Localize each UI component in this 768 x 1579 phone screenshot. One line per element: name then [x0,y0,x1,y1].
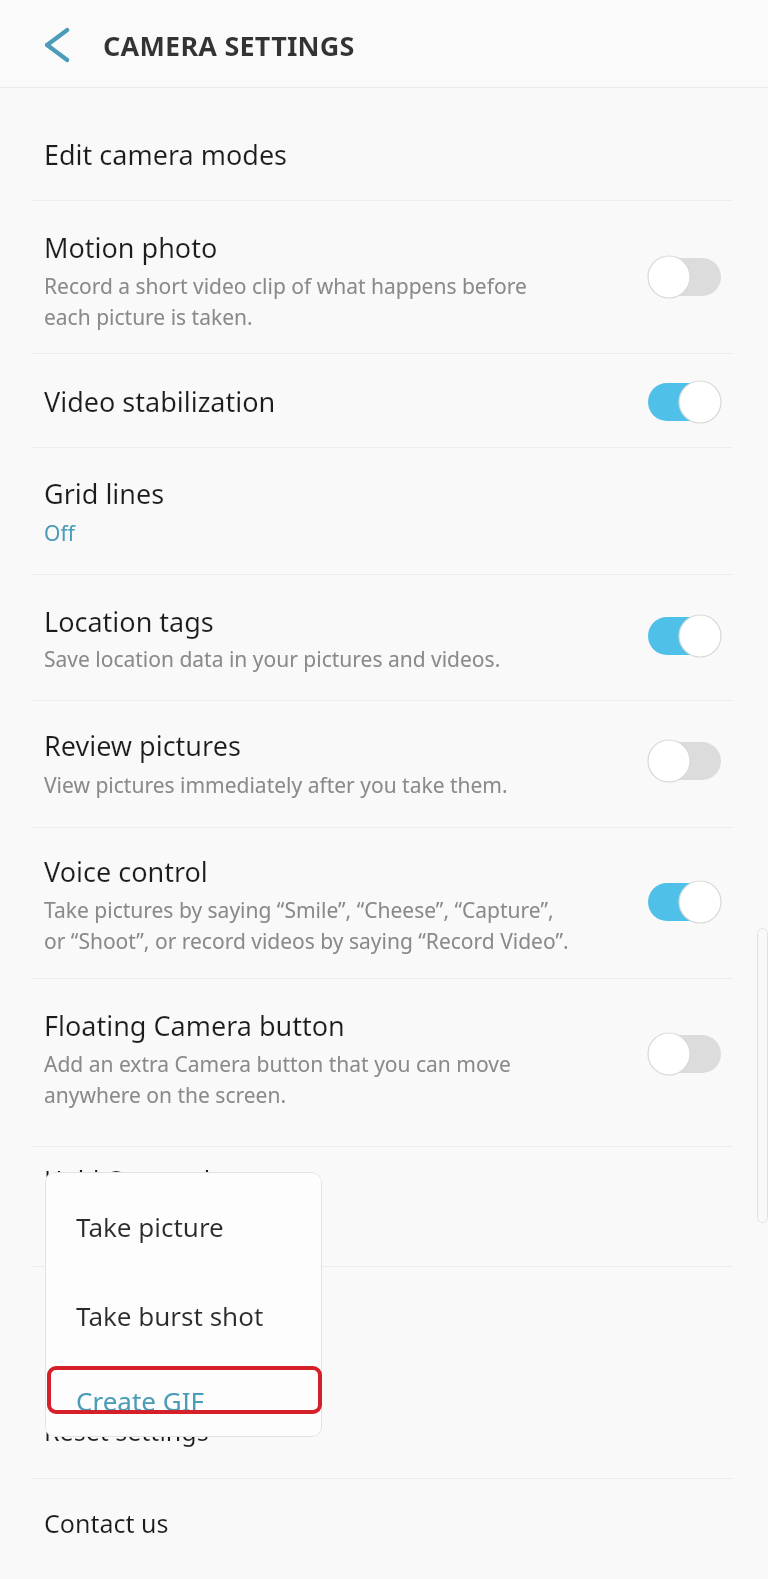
button[interactable]: Toggle on [644,615,725,657]
button[interactable]: Contact us [44,1506,169,1540]
button[interactable]: Take picture [45,1188,322,1264]
button[interactable]: Toggle off [644,1033,725,1075]
button[interactable]: Create GIF [45,1366,322,1434]
button[interactable]: Edit camera modes [44,136,288,173]
button[interactable]: Motion photo [44,229,218,266]
button[interactable]: Video stabilization [44,383,276,420]
staticText: Take burst shot [76,1298,264,1333]
staticText: Hold Camera button to [44,1162,314,1196]
button[interactable]: Take burst shot [45,1277,322,1353]
button[interactable]: Voice control [44,853,208,890]
staticText: Off [44,519,75,548]
button[interactable]: Review pictures [44,727,241,764]
staticText: CAMERA SETTINGS [103,27,355,64]
staticText: Take pictures by saying “Smile”, “Cheese… [44,896,569,955]
staticText: Add an extra Camera button that you can … [44,1050,511,1109]
staticText: Create GIF [76,1383,204,1418]
button[interactable]: Floating Camera button [44,1007,345,1044]
button[interactable]: Toggle on [644,881,725,923]
button[interactable]: Grid lines [44,475,165,512]
staticText: Reset settings [44,1414,209,1448]
button[interactable]: Toggle off [644,740,725,782]
staticText: Quick launch () [44,1297,218,1331]
staticText: Save location data in your pictures and … [44,645,501,674]
staticText: Record a short video clip of what happen… [44,272,527,331]
staticText: Common [44,62,128,88]
button[interactable]: Back [22,14,84,76]
staticText: View pictures immediately after you take… [44,771,508,800]
button[interactable]: Toggle on [644,381,725,423]
staticText: Take picture [76,1209,224,1244]
button[interactable]: Location tags [44,603,214,640]
button[interactable]: Toggle off [644,256,725,298]
